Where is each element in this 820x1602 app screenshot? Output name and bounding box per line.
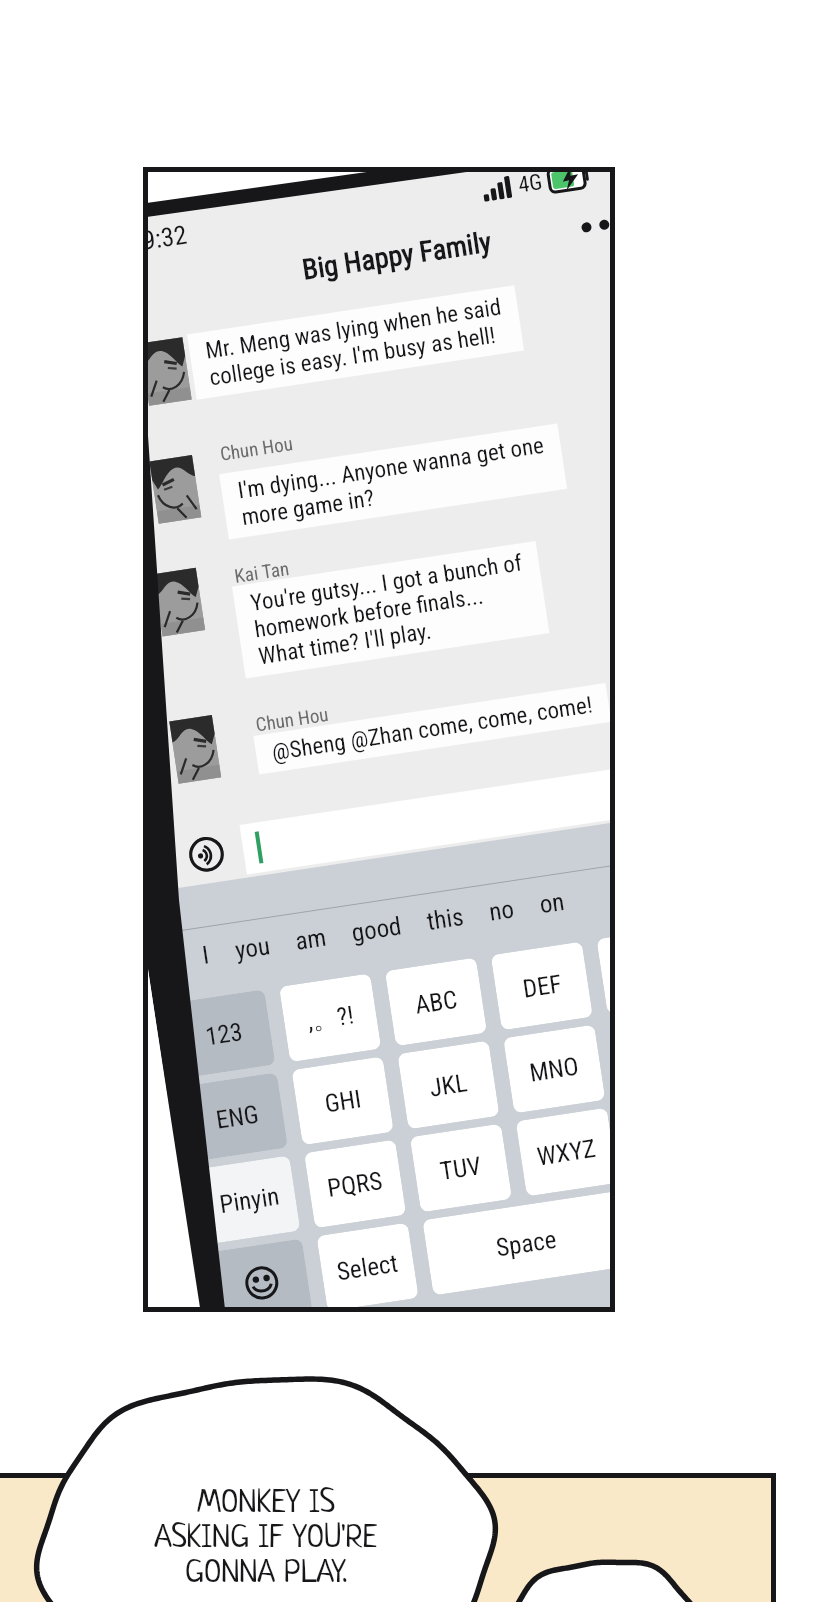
button[interactable]: [211, 1238, 313, 1312]
button[interactable]: 123: [173, 989, 275, 1078]
button[interactable]: Voice message: [186, 834, 227, 875]
button[interactable]: @Sheng @Zhan come, come, come!: [253, 683, 611, 775]
button[interactable]: TUV: [410, 1124, 512, 1212]
staticText: Big Happy Family: [300, 225, 494, 286]
staticText: homework before finals...: [253, 582, 486, 643]
staticText: ASKING IF YOU'RE: [154, 1522, 378, 1557]
button[interactable]: PQRS: [304, 1139, 406, 1228]
staticText: I'm dying... Anyone wanna get one: [236, 432, 546, 504]
staticText: DEF: [521, 969, 564, 1004]
button[interactable]: [143, 337, 192, 406]
staticText: Kai Tan: [233, 557, 290, 587]
staticText: 123: [203, 1017, 245, 1051]
staticText: ,。?!: [305, 999, 356, 1037]
staticText: You're gutsy... I got a bunch of: [249, 549, 525, 617]
button[interactable]: DEF: [491, 941, 593, 1030]
button[interactable]: this: [425, 902, 466, 936]
button[interactable]: More options: [575, 205, 615, 246]
button[interactable]: GHI: [596, 926, 615, 1014]
staticText: GHI: [323, 1084, 364, 1118]
button[interactable]: [149, 455, 201, 524]
button[interactable]: PQR: [609, 1009, 615, 1097]
button[interactable]: you: [233, 931, 272, 965]
staticText: MONKEY IS: [197, 1487, 335, 1522]
staticText: TUV: [438, 1151, 484, 1186]
button[interactable]: on: [537, 887, 566, 919]
staticText: 9:32: [143, 219, 189, 256]
button[interactable]: JKL: [397, 1040, 500, 1129]
button[interactable]: Select: [316, 1222, 419, 1311]
staticText: Pinyin: [218, 1181, 281, 1219]
staticText: 4G: [517, 169, 544, 198]
staticText: GONNA PLAY.: [185, 1557, 347, 1592]
staticText: Mr. Meng was lying when he said: [204, 294, 503, 365]
staticText: Select: [335, 1248, 400, 1286]
staticText: Chun Hou: [254, 703, 330, 735]
button[interactable]: [153, 568, 205, 636]
button[interactable]: MNO: [503, 1025, 605, 1113]
staticText: ABC: [413, 985, 460, 1020]
staticText: What time? I'll play.: [257, 617, 434, 670]
button[interactable]: Space: [422, 1191, 615, 1295]
staticText: MNO: [527, 1051, 581, 1087]
staticText: ENG: [214, 1100, 261, 1135]
button[interactable]: no: [487, 894, 516, 927]
staticText: JKL: [428, 1068, 469, 1102]
button[interactable]: GHI: [291, 1056, 394, 1145]
button[interactable]: WXYZ: [516, 1108, 615, 1196]
button[interactable]: ,。?!: [279, 973, 381, 1062]
other: Speech balloon: [0, 0, 820, 1602]
staticText: PQRS: [325, 1166, 385, 1203]
button[interactable]: You're gutsy... I got a bunch of: [232, 541, 549, 678]
button[interactable]: am: [293, 923, 328, 956]
button[interactable]: [169, 715, 221, 784]
button[interactable]: I'm dying... Anyone wanna get one: [219, 423, 567, 539]
button[interactable]: I: [200, 940, 211, 970]
staticText: Chun Hou: [218, 432, 295, 465]
staticText: college is easy. I'm busy as hell!: [208, 322, 497, 391]
staticText: Space: [494, 1225, 559, 1262]
staticText: WXYZ: [535, 1134, 599, 1171]
button[interactable]: Mr. Meng was lying when he said: [187, 285, 524, 400]
staticText: @Sheng @Zhan come, come, come!: [270, 691, 594, 766]
staticText: more game in?: [240, 485, 376, 531]
button[interactable]: good: [350, 911, 403, 947]
button[interactable]: [239, 752, 615, 874]
button[interactable]: ENG: [186, 1072, 288, 1161]
button[interactable]: ABC: [385, 957, 487, 1046]
button[interactable]: Pinyin: [198, 1155, 300, 1244]
